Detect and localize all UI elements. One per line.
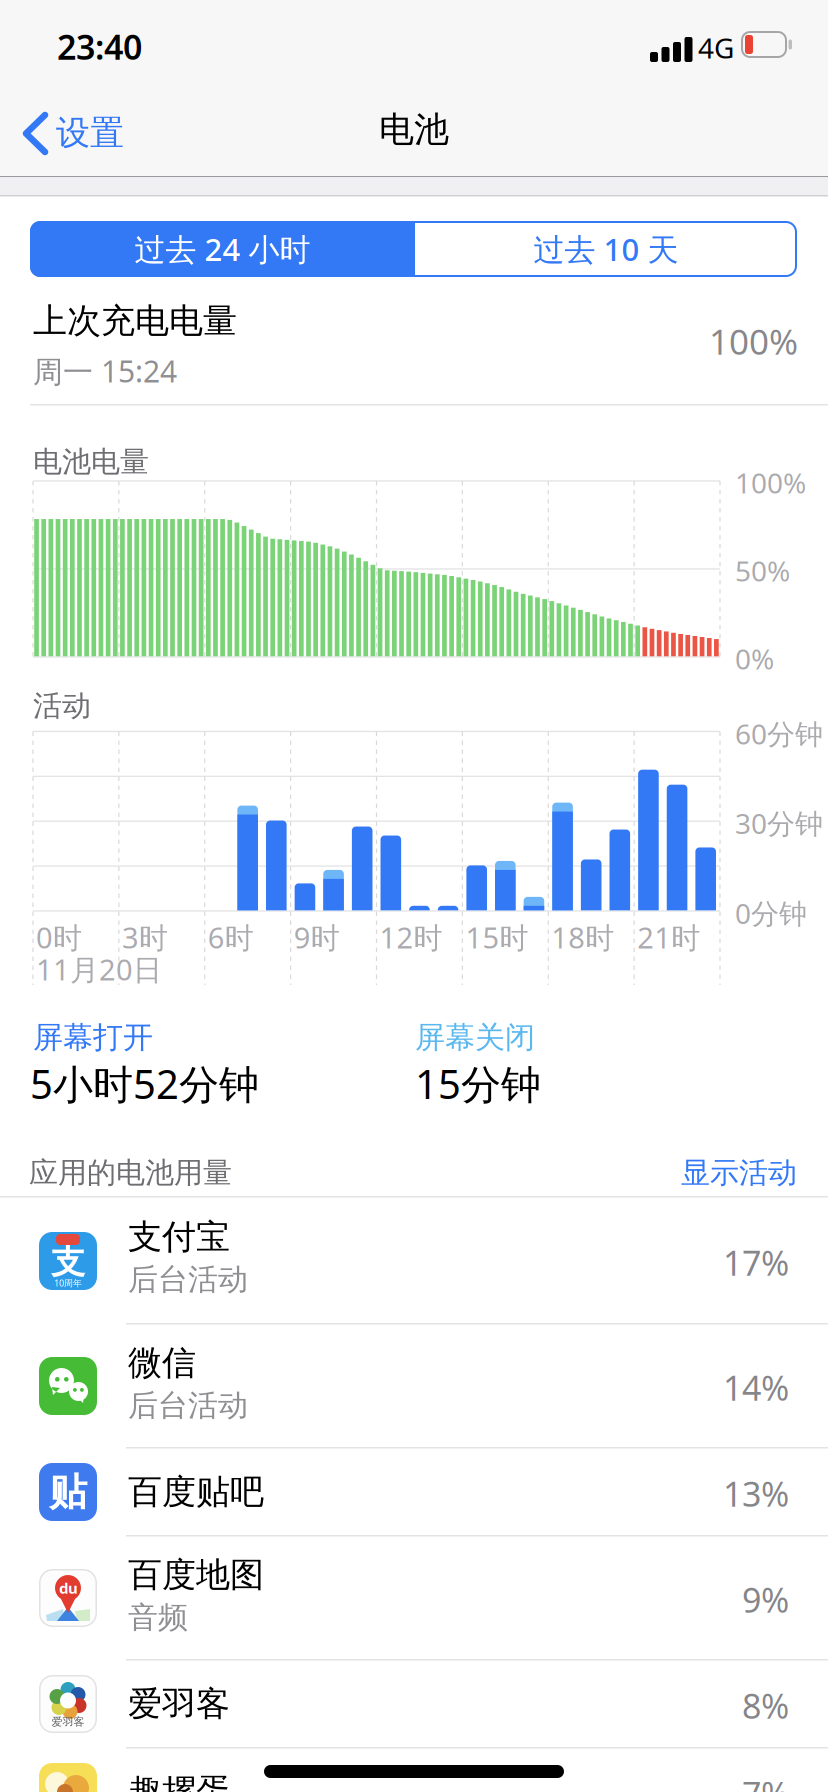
staticText: 17% [723,1240,789,1285]
staticText: 7% [742,1771,789,1792]
staticText: 应用的电池用量 [29,1155,232,1191]
staticText: 11月20日 [36,950,162,988]
staticText: 4G [698,29,734,66]
button[interactable]: 爱羽客 [0,1660,828,1748]
staticText: 9时 [294,918,340,956]
staticText: 百度地图 [128,1554,264,1596]
staticText: 后台活动 [128,1261,248,1298]
staticText: 12时 [379,918,442,956]
staticText: 音频 [128,1599,188,1636]
staticText: 0分钟 [735,894,807,932]
staticText: 电池电量 [33,444,149,480]
staticText: 屏幕关闭 [415,1019,535,1056]
button[interactable]: 过去 10 天 [415,221,797,277]
staticText: 上次充电电量 [33,300,237,342]
staticText: 15时 [465,918,528,956]
staticText: 支付宝 [128,1216,230,1258]
staticText: 设置 [56,112,124,154]
staticText: 100% [735,464,806,501]
staticText: 0时 [36,918,82,956]
staticText: 0% [735,640,774,677]
staticText: 贴 [49,1469,87,1515]
button[interactable]: 支 [0,1198,828,1324]
staticText: 50% [735,552,790,589]
staticText: 9% [742,1577,789,1622]
button[interactable]: 显示活动 [597,1155,797,1191]
staticText: 微信 [128,1342,196,1384]
staticText: 100% [709,318,798,364]
staticText: 过去 10 天 [533,228,678,270]
staticText: 过去 24 小时 [134,228,310,270]
button[interactable]: 趣摞蛋 [0,1748,828,1792]
staticText: 30分钟 [735,804,823,842]
staticText: du [59,1578,78,1598]
staticText: 显示活动 [681,1155,797,1191]
staticText: 14% [723,1365,789,1410]
staticText: 21时 [637,918,700,956]
staticText: 60分钟 [735,715,823,752]
button[interactable]: 设置 [22,103,152,163]
staticText: 支 [51,1241,85,1283]
staticText: 百度贴吧 [128,1471,264,1513]
staticText: 18时 [551,918,614,956]
staticText: 后台活动 [128,1387,248,1424]
staticText: 3时 [122,918,168,956]
staticText: 5小时52分钟 [30,1057,259,1110]
staticText: 周一 15:24 [33,351,177,391]
staticText: 趣摞蛋 [128,1771,230,1792]
staticText: 15分钟 [415,1057,541,1110]
staticText: 爱羽客 [128,1683,230,1725]
staticText: 13% [723,1471,789,1516]
staticText: 爱羽客 [51,1715,84,1728]
staticText: 6时 [208,918,254,956]
button[interactable]: 过去 24 小时 [30,221,415,277]
staticText: 屏幕打开 [33,1019,153,1056]
staticText: 23:40 [57,24,142,69]
button[interactable]: 微信 [0,1324,828,1448]
button[interactable]: du [0,1536,828,1660]
staticText: 电池 [379,108,449,151]
button[interactable]: 贴 [0,1448,828,1536]
staticText: 8% [742,1683,789,1728]
staticText: 活动 [33,688,91,724]
staticText: 10周年 [54,1277,82,1289]
